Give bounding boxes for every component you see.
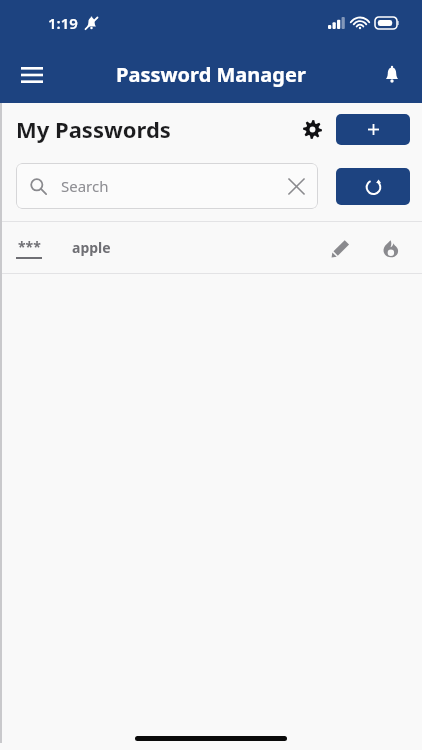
staticText: 1:19 (48, 13, 78, 33)
button[interactable]: *** (0, 222, 422, 273)
button[interactable]: Notifications (370, 53, 414, 97)
button[interactable]: Settings (294, 111, 330, 147)
button[interactable]: Add password (336, 114, 410, 145)
button[interactable]: Burn password (372, 230, 408, 266)
button[interactable]: Edit (322, 230, 358, 266)
button[interactable]: Refresh (336, 168, 410, 205)
staticText: Password Manager (116, 61, 306, 88)
staticText: Search (61, 176, 109, 196)
button[interactable]: Search (16, 163, 318, 209)
staticText: *** (18, 237, 41, 256)
staticText: apple (72, 238, 111, 257)
staticText: My Passwords (16, 114, 171, 144)
button[interactable]: Menu (10, 53, 54, 97)
